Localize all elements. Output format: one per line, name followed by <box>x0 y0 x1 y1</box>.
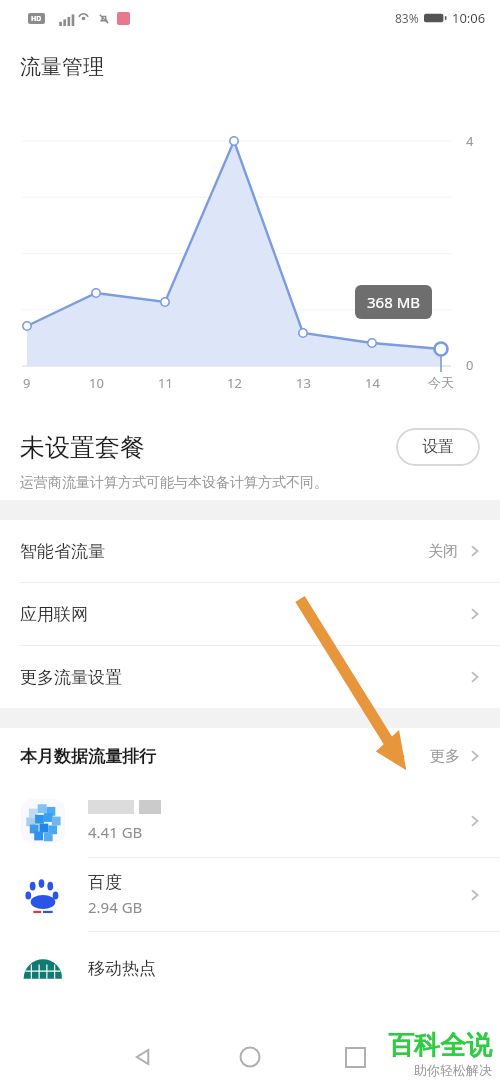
staticText: 移动热点 <box>88 958 156 979</box>
button[interactable]: 百度 <box>0 858 500 932</box>
staticText: 运营商流量计算方式可能与本设备计算方式不同。 <box>20 474 328 492</box>
staticText: 更多 <box>430 747 460 766</box>
staticText: 设置 <box>422 437 454 457</box>
staticText: 应用联网 <box>20 604 88 625</box>
staticText: 0 <box>466 356 474 374</box>
staticText: 10 <box>89 374 104 392</box>
staticText: 13 <box>296 374 311 392</box>
staticText: HD <box>31 14 42 24</box>
staticText: 12 <box>227 374 242 392</box>
button[interactable]: 应用联网 <box>0 583 500 646</box>
button[interactable]: 4.41 GB <box>0 784 500 858</box>
button[interactable]: Back <box>121 1035 165 1079</box>
staticText: 本月数据流量排行 <box>20 746 156 767</box>
button[interactable]: 智能省流量 <box>0 520 500 583</box>
staticText: 智能省流量 <box>20 541 105 562</box>
staticText: 83% <box>395 10 419 26</box>
button[interactable]: 本月数据流量排行 <box>0 728 500 784</box>
staticText: 流量管理 <box>20 54 104 80</box>
staticText: 10:06 <box>452 9 486 27</box>
staticText: 关闭 <box>428 542 458 561</box>
staticText: 11 <box>158 374 173 392</box>
staticText: 百度 <box>88 872 122 893</box>
button[interactable]: 设置 <box>396 428 480 466</box>
staticText: 368 MB <box>367 292 420 312</box>
button[interactable]: 更多流量设置 <box>0 646 500 708</box>
staticText: 今天 <box>428 374 454 390</box>
staticText: 百科全说 <box>388 1029 492 1062</box>
button[interactable]: Home <box>228 1035 272 1079</box>
button[interactable]: 移动热点 <box>0 932 500 1005</box>
staticText: 2.94 GB <box>88 897 143 917</box>
staticText: 更多流量设置 <box>20 667 122 688</box>
staticText: 14 <box>365 374 380 392</box>
staticText: 助你轻松解决 <box>414 1062 492 1078</box>
staticText: 4.41 GB <box>88 822 143 842</box>
staticText: 4 <box>466 132 474 150</box>
button[interactable]: Recent apps <box>333 1035 377 1079</box>
staticText: 未设置套餐 <box>20 432 145 463</box>
staticText: 9 <box>23 374 31 392</box>
